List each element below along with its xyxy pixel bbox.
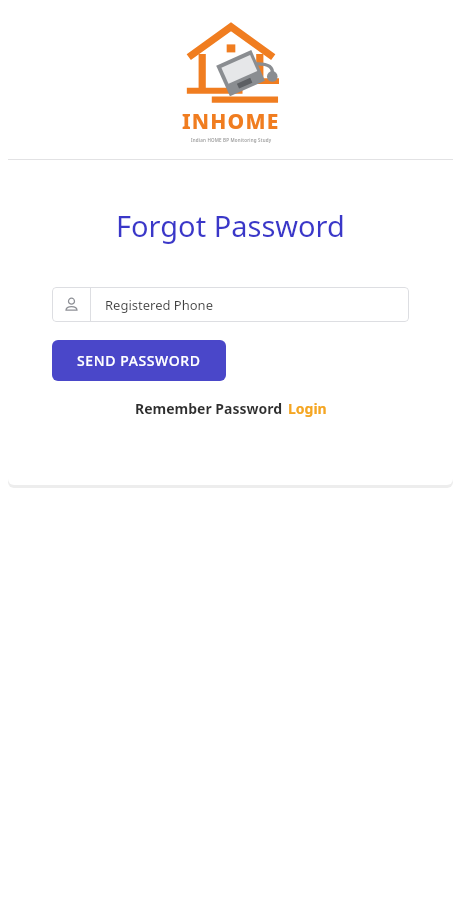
staticText: SEND PASSWORD xyxy=(77,351,201,370)
staticText: Remember Password xyxy=(135,399,282,418)
staticText: Indian HOME BP Monitoring Study xyxy=(191,137,272,143)
staticText: Registered Phone xyxy=(105,296,213,314)
staticText: INHOME xyxy=(182,107,280,136)
button[interactable]: Login xyxy=(288,399,327,418)
button[interactable]: SEND PASSWORD xyxy=(52,340,226,381)
button[interactable]: User xyxy=(52,287,409,322)
staticText: Login xyxy=(288,399,327,418)
staticText: Forgot Password xyxy=(116,206,345,245)
other: User xyxy=(64,297,79,312)
